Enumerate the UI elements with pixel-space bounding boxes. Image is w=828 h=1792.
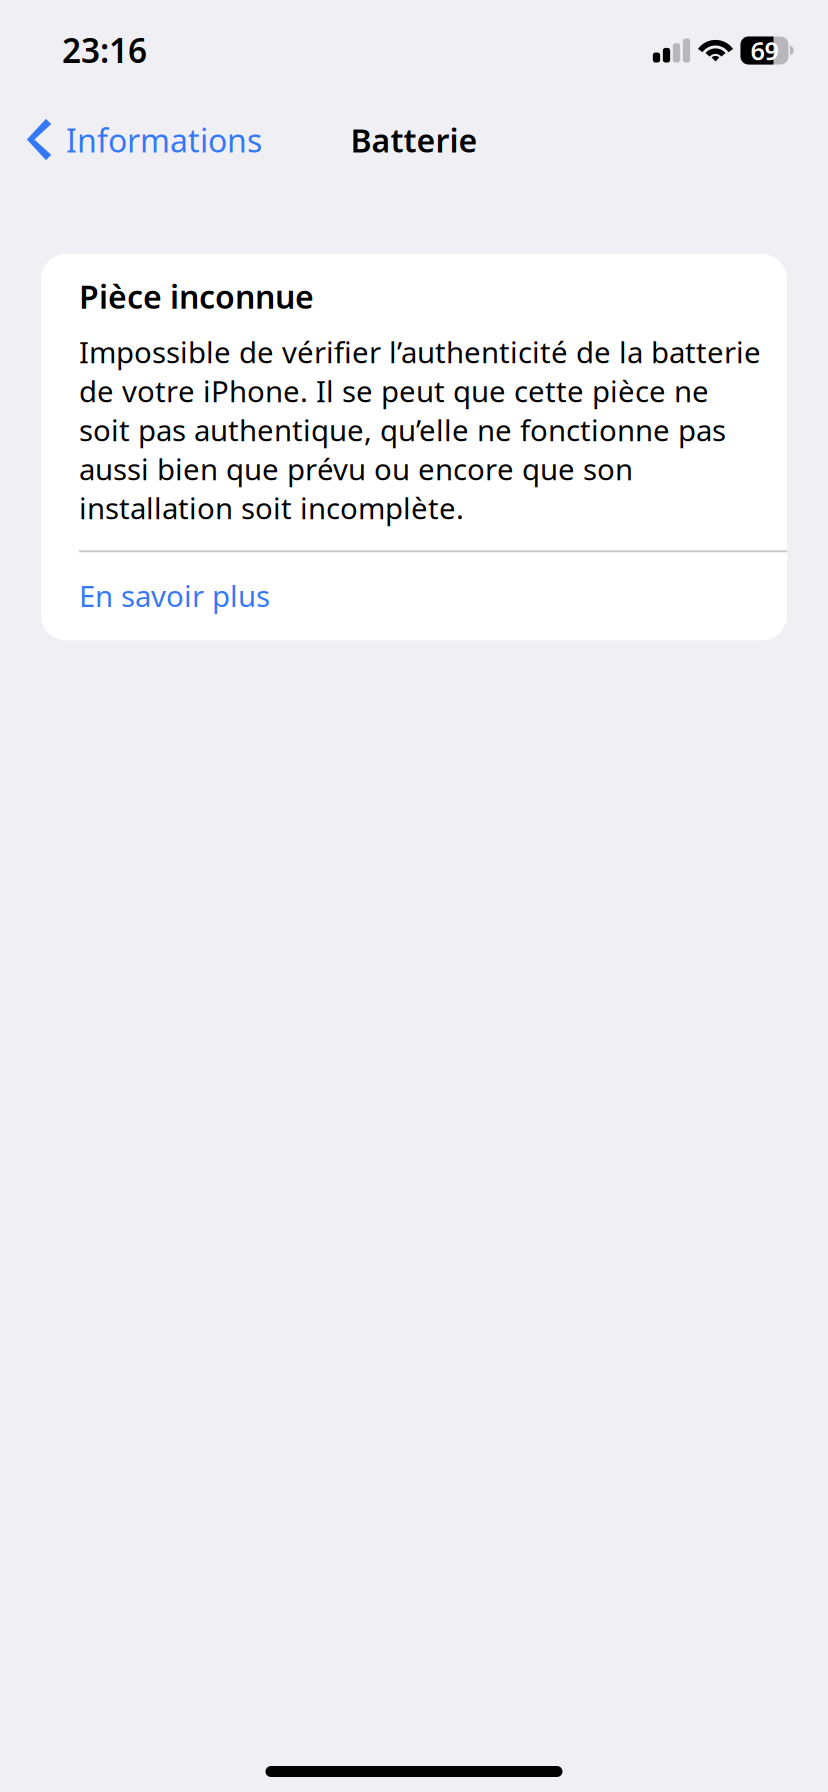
staticText: 69 <box>750 34 778 67</box>
staticText: Pièce inconnue <box>79 275 314 317</box>
staticText: Impossible de vérifier l’authenticité de… <box>79 332 761 527</box>
button[interactable]: Retour à Informations <box>0 106 276 174</box>
staticText: 23:16 <box>62 28 147 72</box>
staticText: Informations <box>66 119 262 161</box>
staticText: En savoir plus <box>79 576 270 615</box>
staticText: Batterie <box>350 119 477 161</box>
button[interactable]: En savoir plus <box>41 552 787 640</box>
